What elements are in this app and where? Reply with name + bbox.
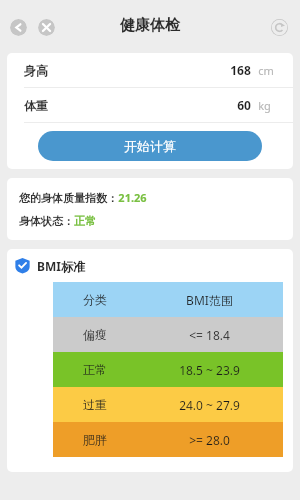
staticText: 分类 bbox=[83, 292, 107, 307]
staticText: kg bbox=[258, 98, 271, 113]
staticText: 24.0 ~ 27.9 bbox=[179, 397, 240, 413]
staticText: <= 18.4 bbox=[189, 327, 230, 343]
staticText: 正常 bbox=[83, 362, 107, 377]
staticText: 您的身体质量指数： bbox=[19, 191, 118, 205]
button[interactable]: Back bbox=[10, 19, 27, 36]
staticText: 身体状态： bbox=[19, 214, 74, 228]
button[interactable]: 正常 bbox=[53, 352, 283, 387]
button[interactable]: 分类 bbox=[53, 282, 283, 317]
staticText: 健康体检 bbox=[120, 16, 180, 35]
button[interactable]: 开始计算 bbox=[38, 131, 262, 161]
staticText: 偏瘦 bbox=[83, 327, 107, 342]
button[interactable]: 体重 bbox=[7, 88, 293, 122]
staticText: 体重 bbox=[24, 98, 48, 113]
button[interactable]: 身高 bbox=[7, 53, 293, 87]
staticText: BMI标准 bbox=[37, 258, 85, 274]
button[interactable]: 偏瘦 bbox=[53, 317, 283, 352]
staticText: 正常 bbox=[74, 214, 96, 228]
staticText: BMI范围 bbox=[186, 292, 233, 308]
button[interactable]: 过重 bbox=[53, 387, 283, 422]
button[interactable]: 肥胖 bbox=[53, 422, 283, 457]
staticText: cm bbox=[258, 63, 274, 78]
staticText: >= 28.0 bbox=[189, 432, 230, 448]
staticText: 开始计算 bbox=[124, 138, 176, 154]
staticText: 60 bbox=[237, 97, 251, 113]
staticText: 21.26 bbox=[118, 190, 147, 205]
staticText: 肥胖 bbox=[83, 432, 107, 447]
staticText: 168 bbox=[230, 62, 251, 78]
button[interactable]: Refresh bbox=[271, 19, 288, 36]
staticText: 18.5 ~ 23.9 bbox=[179, 362, 240, 378]
staticText: 过重 bbox=[83, 397, 107, 412]
staticText: 身高 bbox=[24, 63, 48, 78]
button[interactable]: Close bbox=[38, 19, 55, 36]
